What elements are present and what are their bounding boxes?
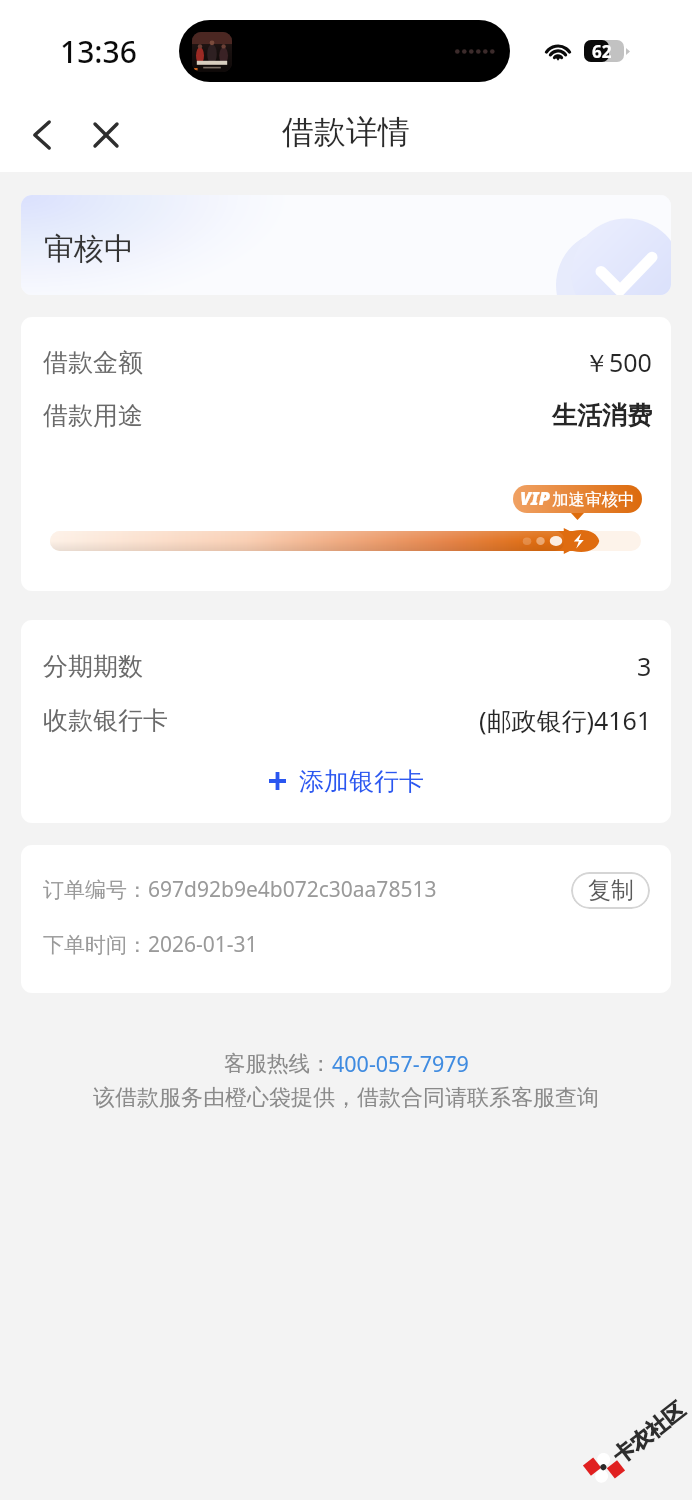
staticText: 借款详情 bbox=[282, 112, 410, 152]
staticText: 收款银行卡 bbox=[43, 705, 168, 736]
staticText: 添加银行卡 bbox=[299, 766, 424, 797]
staticText: 客服热线： bbox=[224, 1050, 332, 1077]
staticText: 13:36 bbox=[60, 31, 137, 72]
staticText: 2026-01-31 bbox=[148, 930, 258, 959]
staticText: 3 bbox=[637, 649, 652, 683]
staticText: ￥500 bbox=[584, 345, 652, 379]
staticText: 生活消费 bbox=[552, 400, 652, 431]
staticText: 复制 bbox=[588, 876, 634, 905]
button[interactable]: 添加银行卡 bbox=[21, 760, 671, 802]
staticText: 下单时间： bbox=[43, 932, 148, 958]
staticText: 借款金额 bbox=[43, 347, 143, 378]
staticText: (邮政银行)4161 bbox=[479, 703, 652, 737]
staticText: 订单编号： bbox=[43, 877, 148, 903]
button[interactable]: 复制 bbox=[571, 872, 650, 909]
button[interactable]: Close bbox=[78, 107, 134, 163]
staticText: 该借款服务由橙心袋提供，借款合同请联系客服查询 bbox=[93, 1084, 599, 1112]
staticText: 分期期数 bbox=[43, 651, 143, 682]
staticText: 审核中 bbox=[44, 230, 134, 268]
button[interactable]: Back bbox=[14, 107, 70, 163]
staticText: VIP bbox=[520, 486, 550, 511]
button[interactable]: 400-057-7979 bbox=[332, 1049, 469, 1078]
staticText: 加速审核中 bbox=[552, 489, 635, 510]
staticText: 借款用途 bbox=[43, 400, 143, 431]
staticText: 697d92b9e4b072c30aa78513 bbox=[148, 875, 437, 904]
staticText: 62 bbox=[592, 40, 612, 62]
staticText: 卡农社区 bbox=[608, 1397, 690, 1469]
